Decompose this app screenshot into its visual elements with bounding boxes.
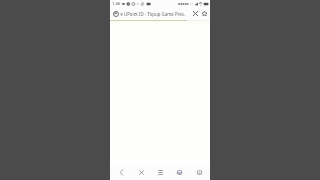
button[interactable]: Tab switcher (171, 164, 187, 180)
button[interactable]: Close tab (133, 164, 149, 180)
button[interactable]: Home (191, 164, 207, 180)
staticText: UPoint ID - Topup Game Pres. (124, 11, 186, 17)
button[interactable]: Bookmark (200, 9, 209, 18)
staticText: 1:46 (112, 1, 121, 7)
button[interactable]: Menu (152, 164, 168, 180)
button[interactable]: Stop loading (191, 9, 200, 18)
button[interactable]: Back (113, 164, 129, 180)
